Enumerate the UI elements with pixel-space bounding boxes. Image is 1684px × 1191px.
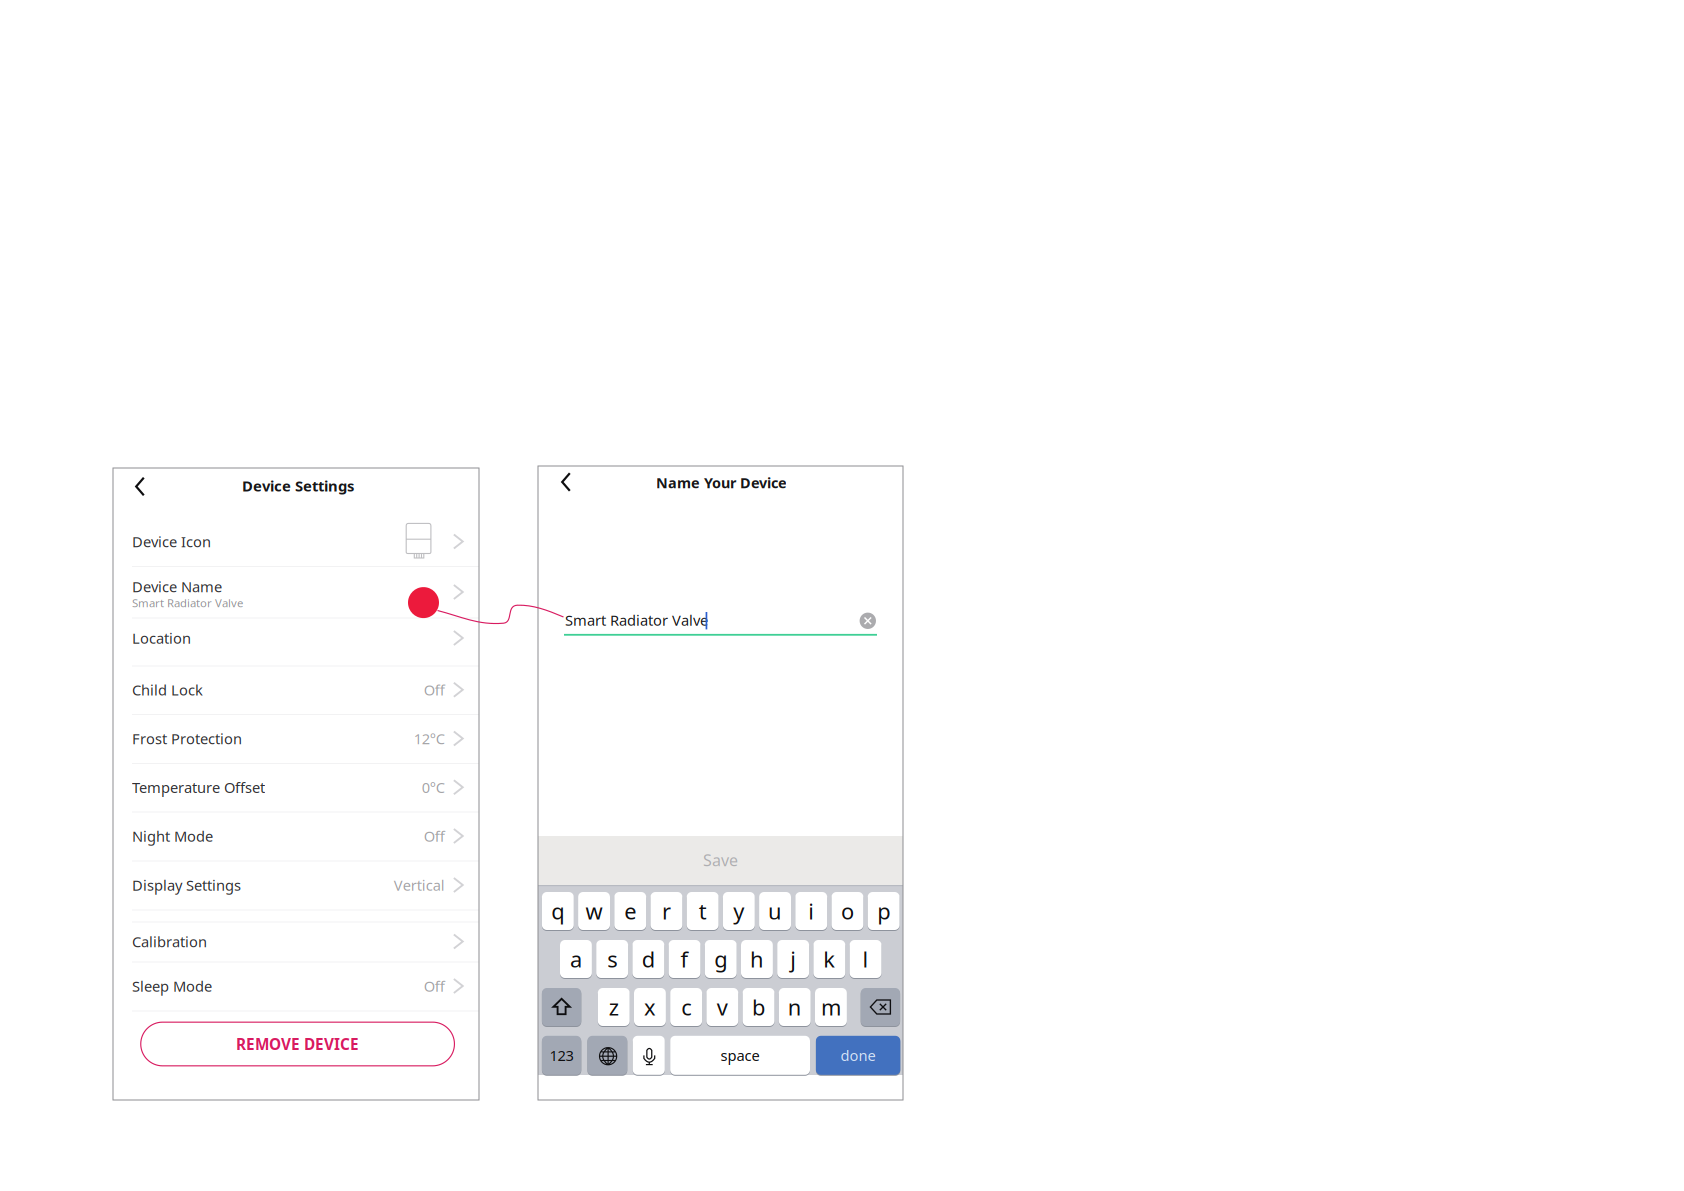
button[interactable]: Clear text [857, 610, 879, 632]
staticText: a [570, 944, 582, 974]
button[interactable]: Next keyboard [587, 1036, 627, 1075]
button[interactable]: Device Icon [113, 512, 479, 566]
staticText: Smart Radiator Valve [132, 595, 243, 610]
button[interactable]: i [795, 892, 827, 930]
staticText: l [862, 944, 868, 974]
staticText: s [607, 944, 617, 974]
button[interactable]: Shift [542, 988, 581, 1026]
button[interactable]: k [813, 940, 845, 978]
staticText: Device Icon [132, 531, 211, 551]
staticText: done [841, 1045, 876, 1065]
button[interactable]: Location [113, 617, 479, 665]
staticText: o [841, 896, 854, 926]
button[interactable]: n [779, 988, 811, 1026]
staticText: c [681, 992, 691, 1022]
button[interactable]: REMOVE DEVICE [141, 1022, 454, 1066]
staticText: b [752, 992, 765, 1022]
button[interactable]: t [687, 892, 719, 930]
staticText: g [714, 944, 727, 974]
button[interactable]: g [705, 940, 737, 978]
staticText: 12°C [414, 728, 445, 748]
button[interactable]: 123 [542, 1036, 581, 1075]
button[interactable]: r [650, 892, 682, 930]
staticText: Vertical [394, 875, 445, 895]
staticText: e [624, 896, 636, 926]
button[interactable]: u [759, 892, 791, 930]
button[interactable]: Device Name [113, 566, 479, 617]
button[interactable]: Frost Protection [113, 714, 479, 763]
staticText: Off [424, 826, 445, 846]
staticText: Calibration [132, 931, 207, 951]
staticText: Device Settings [242, 476, 354, 496]
staticText: x [644, 992, 656, 1022]
button[interactable]: done [816, 1036, 900, 1075]
staticText: Location [132, 628, 191, 648]
button[interactable]: s [596, 940, 628, 978]
button[interactable]: Save [538, 836, 903, 885]
staticText: t [699, 896, 707, 926]
staticText: Device Name [132, 576, 222, 596]
staticText: i [808, 896, 814, 926]
button[interactable]: q [542, 892, 574, 930]
button[interactable]: Child Lock [113, 665, 479, 714]
staticText: Frost Protection [132, 728, 242, 748]
staticText: Child Lock [132, 680, 203, 700]
staticText: Off [424, 680, 445, 700]
staticText: u [768, 896, 782, 926]
button[interactable]: Back [552, 465, 582, 499]
staticText: Display Settings [132, 875, 241, 895]
staticText: w [586, 896, 603, 926]
button[interactable]: z [598, 988, 630, 1026]
staticText: v [717, 992, 728, 1022]
button[interactable]: c [670, 988, 702, 1026]
button[interactable]: p [868, 892, 900, 930]
staticText: Off [424, 976, 445, 996]
button[interactable]: Night Mode [113, 811, 479, 860]
button[interactable]: a [560, 940, 592, 978]
staticText: 0°C [422, 777, 445, 797]
button[interactable]: Calibration [113, 921, 479, 961]
button[interactable]: l [850, 940, 881, 978]
staticText: Temperature Offset [132, 777, 265, 797]
staticText: k [823, 944, 835, 974]
staticText: Name Your Device [656, 473, 787, 492]
staticText: 123 [550, 1045, 574, 1065]
staticText: Night Mode [132, 826, 213, 846]
button[interactable]: x [634, 988, 666, 1026]
button[interactable]: f [669, 940, 700, 978]
button[interactable]: Sleep Mode [113, 961, 479, 1010]
staticText: Smart Radiator Valve [565, 610, 708, 630]
button[interactable]: j [777, 940, 809, 978]
button[interactable]: Dictation [633, 1036, 665, 1075]
staticText: Sleep Mode [132, 976, 212, 996]
staticText: Save [703, 849, 738, 871]
button[interactable]: Back [126, 469, 156, 503]
button[interactable]: b [743, 988, 774, 1026]
staticText: r [662, 896, 671, 926]
staticText: j [790, 944, 796, 974]
button[interactable]: w [578, 892, 610, 930]
button[interactable]: o [831, 892, 863, 930]
button[interactable]: e [614, 892, 646, 930]
staticText: q [551, 896, 564, 926]
staticText: space [721, 1045, 760, 1065]
button[interactable]: v [706, 988, 738, 1026]
staticText: m [821, 992, 841, 1022]
button[interactable]: h [741, 940, 773, 978]
staticText: REMOVE DEVICE [236, 1034, 359, 1054]
button[interactable]: Temperature Offset [113, 763, 479, 811]
staticText: h [750, 944, 764, 974]
button[interactable]: y [723, 892, 755, 930]
button[interactable]: m [815, 988, 847, 1026]
staticText: d [642, 944, 655, 974]
staticText: f [681, 944, 689, 974]
button[interactable]: Delete [861, 988, 900, 1026]
staticText: z [609, 992, 619, 1022]
button[interactable]: space [670, 1036, 810, 1075]
staticText: p [877, 896, 890, 926]
staticText: y [733, 896, 744, 926]
button[interactable]: d [632, 940, 664, 978]
button[interactable]: Display Settings [113, 860, 479, 909]
staticText: n [788, 992, 802, 1022]
